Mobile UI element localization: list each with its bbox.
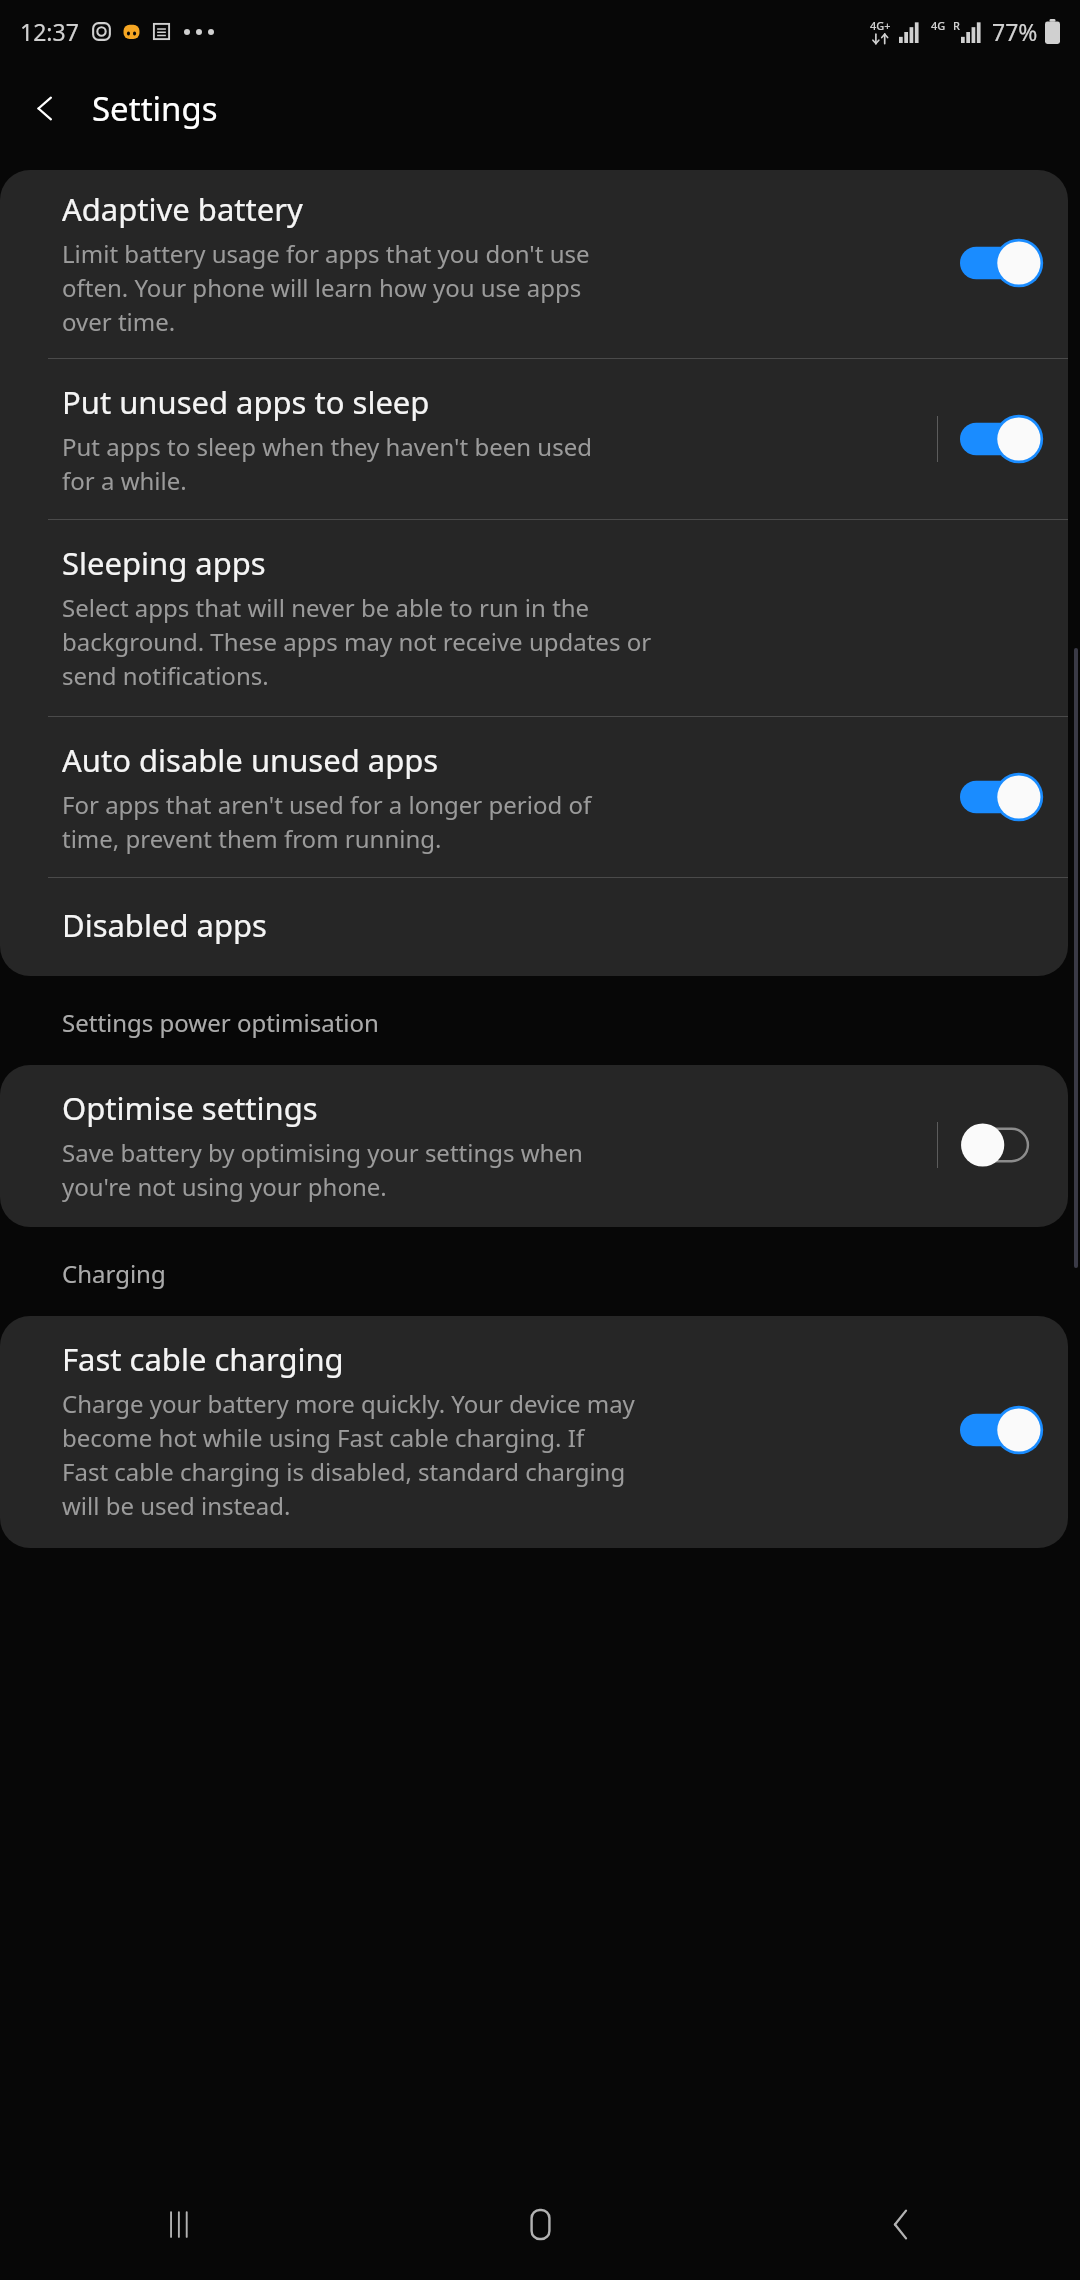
button[interactable]: Switch on (960, 412, 1046, 466)
staticText: Select apps that will never be able to r… (62, 591, 652, 692)
button[interactable]: Optimise settings (0, 1065, 1068, 1227)
button[interactable]: Fast cable charging (0, 1316, 1068, 1548)
staticText: Adaptive battery (62, 188, 303, 230)
staticText: Settings (92, 86, 218, 131)
button[interactable]: Put unused apps to sleep (0, 359, 1068, 519)
staticText: For apps that aren't used for a longer p… (62, 788, 592, 855)
button[interactable]: Disabled apps (0, 878, 1068, 976)
button[interactable]: Auto disable unused apps (0, 717, 1068, 877)
staticText: Fast cable charging (62, 1338, 344, 1380)
staticText: Charging (62, 1257, 166, 1290)
staticText: 12:37 (20, 16, 79, 47)
staticText: R (953, 18, 960, 33)
staticText: Charge your battery more quickly. Your d… (62, 1387, 635, 1522)
button[interactable]: Recent apps (0, 2168, 360, 2280)
button[interactable]: Adaptive battery (0, 170, 1068, 358)
staticText: 77% (992, 16, 1038, 47)
staticText: Put apps to sleep when they haven't been… (62, 430, 592, 497)
staticText: Limit battery usage for apps that you do… (62, 237, 590, 338)
staticText: 4G+ (870, 18, 891, 33)
button[interactable]: Home (360, 2168, 720, 2280)
button[interactable]: Switch off (960, 1118, 1046, 1172)
staticText: Put unused apps to sleep (62, 381, 430, 423)
button[interactable]: Switch on (960, 770, 1046, 824)
staticText: Settings power optimisation (62, 1006, 379, 1039)
button[interactable]: Switch on (960, 236, 1046, 290)
button[interactable]: Navigate up (14, 77, 76, 139)
staticText: 4G (931, 18, 946, 33)
staticText: Optimise settings (62, 1087, 318, 1129)
button[interactable]: Switch on (960, 1403, 1046, 1457)
button[interactable]: Back (720, 2168, 1080, 2280)
staticText: Save battery by optimising your settings… (62, 1136, 583, 1203)
button[interactable]: Sleeping apps (0, 520, 1068, 716)
staticText: Auto disable unused apps (62, 739, 439, 781)
staticText: Sleeping apps (62, 542, 266, 584)
staticText: Disabled apps (62, 904, 267, 946)
